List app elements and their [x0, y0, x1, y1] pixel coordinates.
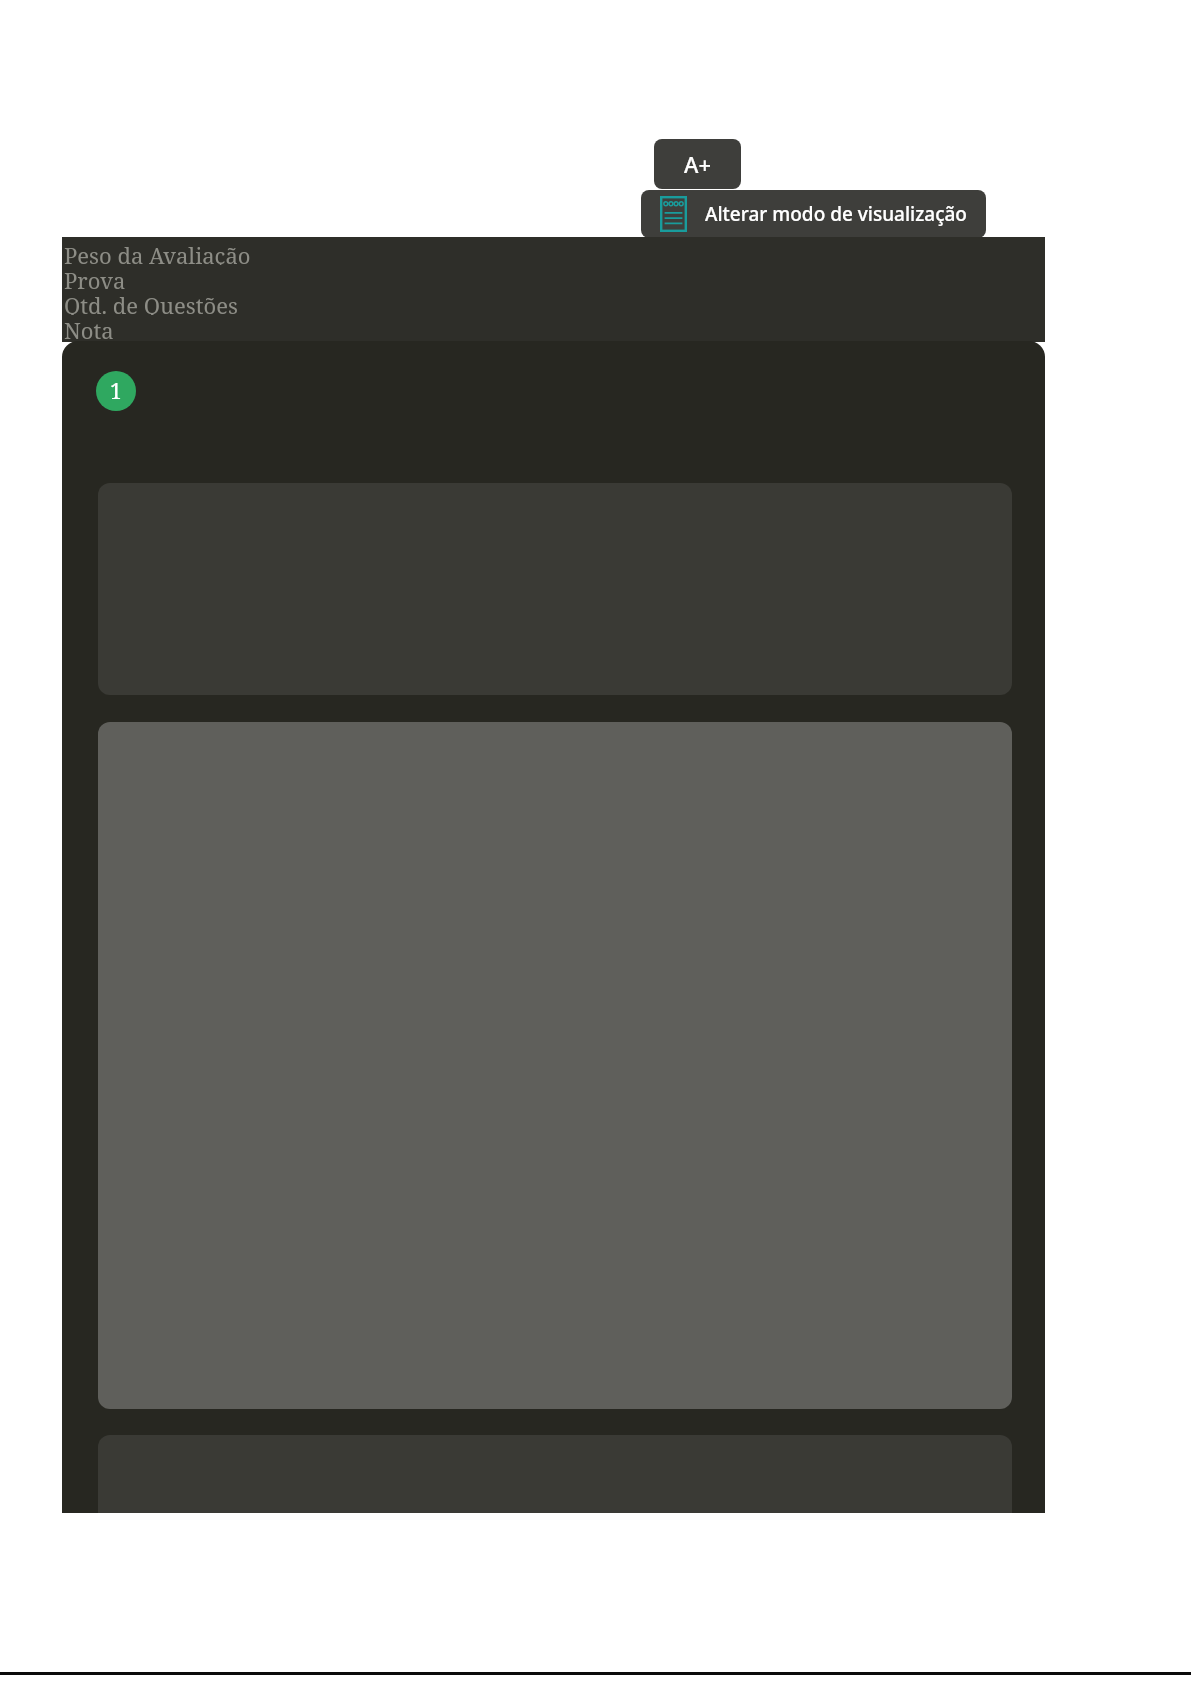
- staticText: Alterar modo de visualização: [705, 201, 967, 227]
- staticText: Nota: [64, 315, 114, 340]
- button[interactable]: Alterar modo de visualização: [641, 190, 986, 238]
- staticText: 1: [110, 377, 122, 406]
- staticText: Prova: [64, 265, 126, 290]
- other: Alterar modo de visualização: [660, 196, 687, 232]
- staticText: Peso da Avaliação: [64, 240, 251, 265]
- staticText: A+: [684, 149, 711, 179]
- staticText: Qtd. de Questões: [64, 290, 238, 315]
- button[interactable]: A+: [654, 139, 741, 189]
- button[interactable]: 1: [96, 371, 136, 411]
